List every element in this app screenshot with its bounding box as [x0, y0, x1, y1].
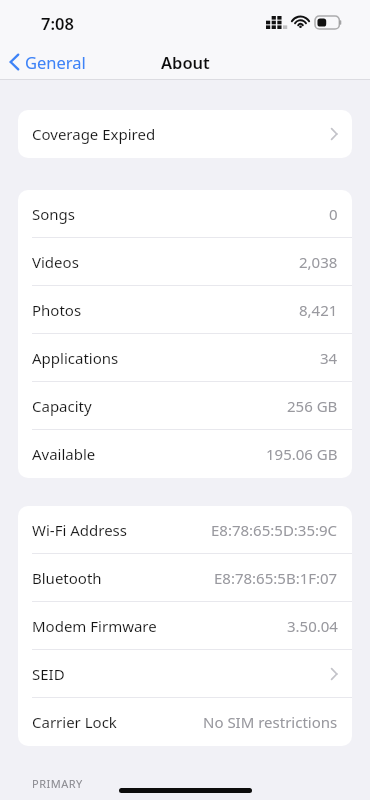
button[interactable]: Capacity	[18, 382, 352, 430]
button[interactable]: Applications	[18, 334, 352, 382]
staticText: Available	[32, 444, 96, 464]
button[interactable]: General	[5, 46, 90, 78]
button[interactable]: Coverage Expired	[18, 110, 352, 158]
staticText: 3.50.04	[287, 616, 338, 636]
staticText: Carrier Lock	[32, 712, 117, 732]
staticText: PRIMARY	[32, 776, 83, 791]
staticText: Songs	[32, 204, 75, 224]
staticText: Bluetooth	[32, 568, 102, 588]
button[interactable]: Available	[18, 430, 352, 478]
button[interactable]: Modem Firmware	[18, 602, 352, 650]
staticText: 34	[320, 348, 338, 368]
button[interactable]: SEID	[18, 650, 352, 698]
staticText: No SIM restrictions	[203, 712, 338, 732]
staticText: Modem Firmware	[32, 616, 157, 636]
staticText: SEID	[32, 664, 65, 684]
staticText: Applications	[32, 348, 119, 368]
staticText: 256 GB	[287, 396, 338, 416]
staticText: 2,038	[299, 252, 338, 272]
button[interactable]: Videos	[18, 238, 352, 286]
staticText: Photos	[32, 300, 82, 320]
staticText: 0	[329, 204, 338, 224]
button[interactable]: Photos	[18, 286, 352, 334]
staticText: E8:78:65:5D:35:9C	[211, 520, 338, 540]
staticText: 7:08	[41, 12, 74, 34]
button[interactable]: Bluetooth	[18, 554, 352, 602]
staticText: Videos	[32, 252, 79, 272]
staticText: Coverage Expired	[32, 124, 156, 144]
staticText: Wi-Fi Address	[32, 520, 127, 540]
button[interactable]: Wi-Fi Address	[18, 506, 352, 554]
staticText: E8:78:65:5B:1F:07	[214, 568, 338, 588]
button[interactable]: Carrier Lock	[18, 698, 352, 746]
staticText: Capacity	[32, 396, 92, 416]
staticText: 8,421	[299, 300, 338, 320]
staticText: About	[161, 51, 210, 73]
staticText: General	[25, 51, 86, 73]
staticText: 195.06 GB	[266, 444, 338, 464]
button[interactable]: Songs	[18, 190, 352, 238]
